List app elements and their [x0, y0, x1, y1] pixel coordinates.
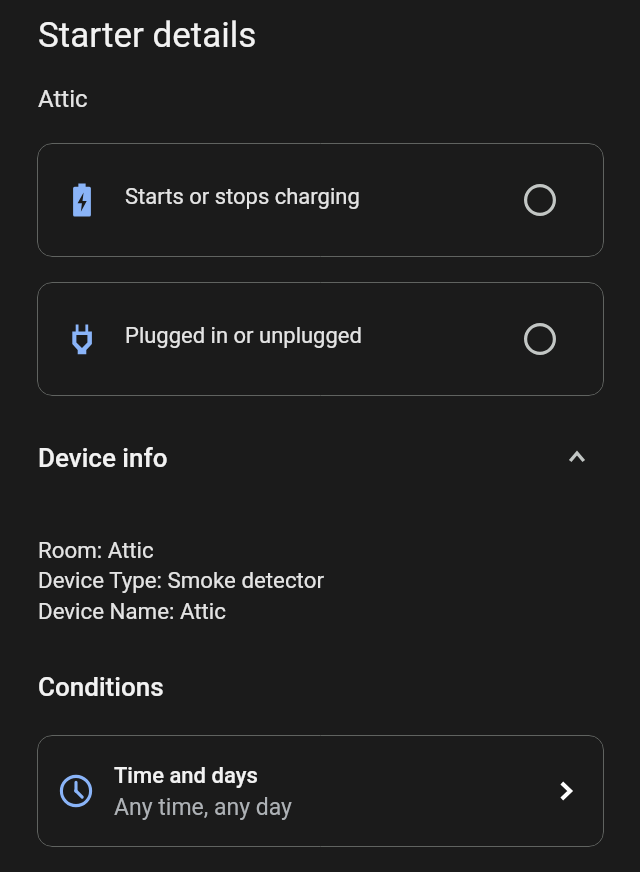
button[interactable]: Starts or stops charging: [37, 143, 604, 257]
staticText: Device Type: Smoke detector: [38, 567, 324, 593]
other: Collapse device info: [559, 439, 595, 475]
button[interactable]: Device info: [0, 428, 640, 484]
button[interactable]: Time and days: [37, 735, 604, 847]
staticText: Any time, any day: [114, 794, 293, 821]
staticText: Starts or stops charging: [125, 184, 360, 210]
staticText: Plugged in or unplugged: [125, 323, 362, 349]
staticText: Conditions: [38, 672, 164, 702]
staticText: Device Name: Attic: [38, 598, 226, 624]
staticText: Time and days: [114, 763, 258, 789]
staticText: Device info: [38, 443, 168, 473]
staticText: Attic: [38, 85, 88, 113]
other: Open time and days: [549, 774, 583, 808]
staticText: Starter details: [38, 15, 257, 56]
button[interactable]: Plugged in or unplugged: [37, 282, 604, 396]
staticText: Room: Attic: [38, 537, 154, 563]
